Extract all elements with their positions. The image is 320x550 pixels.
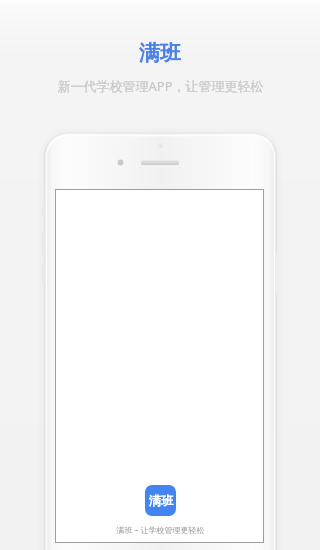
staticText: 满班 bbox=[149, 493, 173, 508]
staticText: 满班 bbox=[139, 40, 181, 66]
staticText: 满班 – 让学校管理更轻松 bbox=[116, 524, 205, 535]
button[interactable]: 满班 app icon bbox=[145, 485, 176, 516]
staticText: 新一代学校管理APP，让管理更轻松 bbox=[57, 77, 264, 95]
